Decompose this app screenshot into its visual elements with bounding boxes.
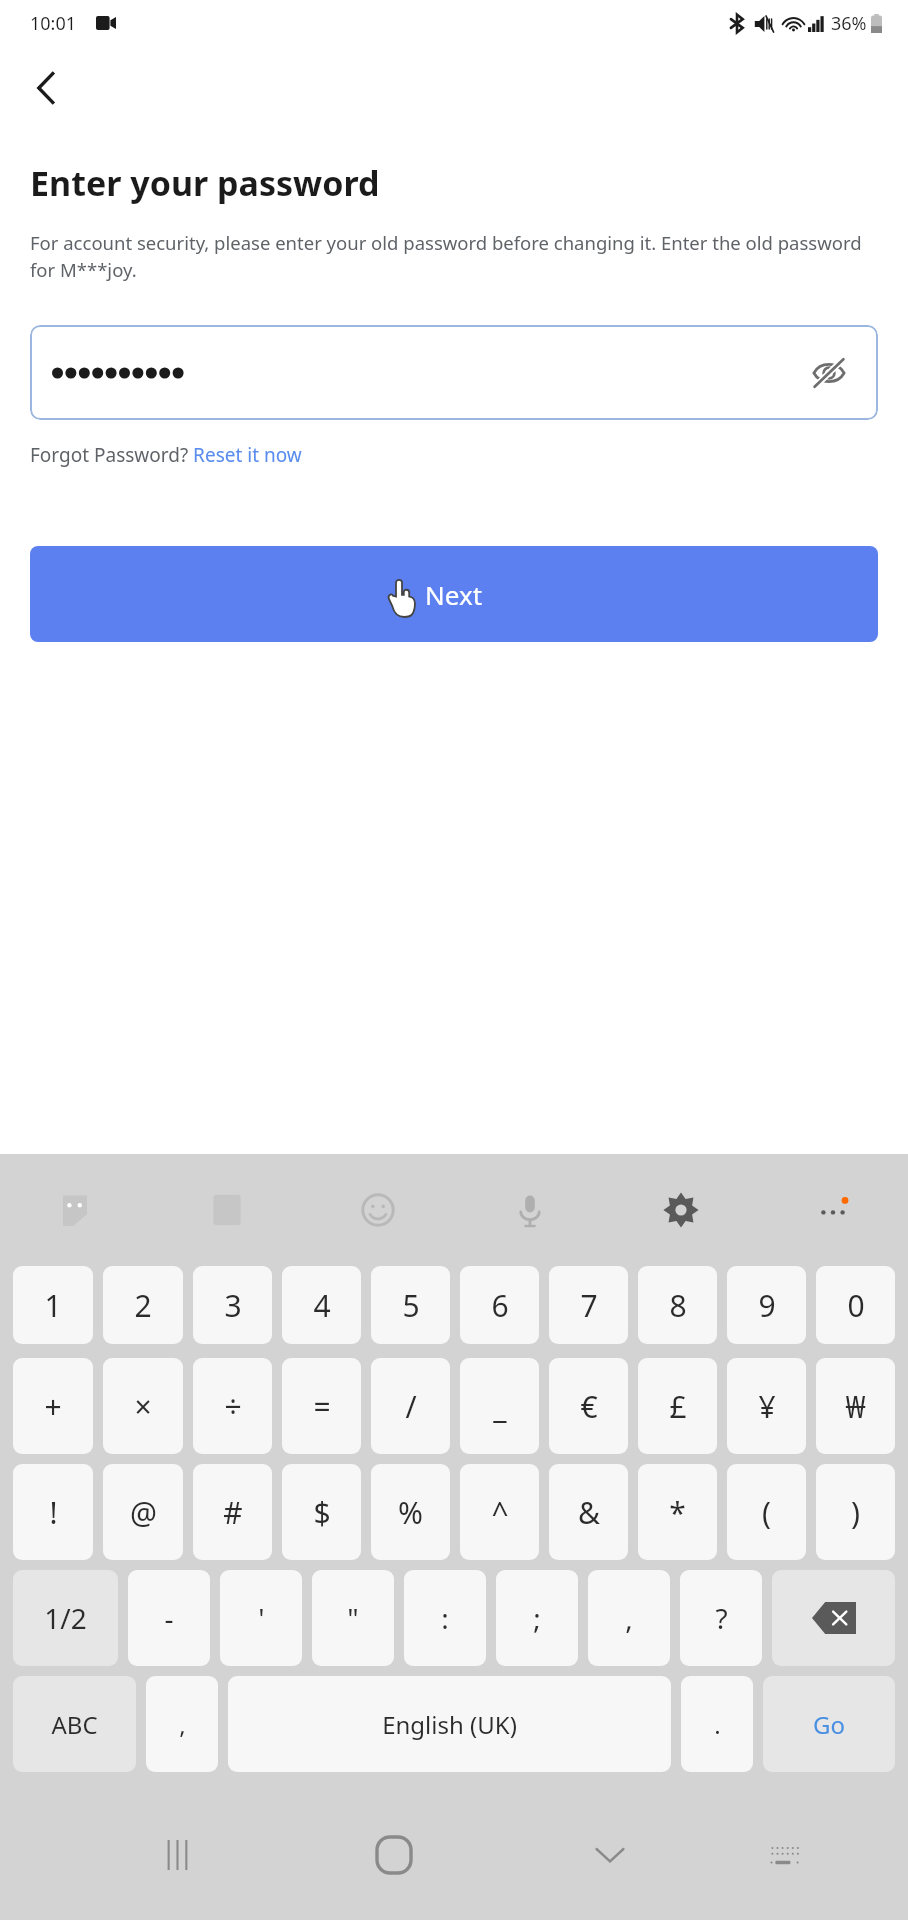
button[interactable]: Back [16,58,76,118]
staticText: 5 [402,1285,420,1326]
button[interactable]: 3 [193,1266,272,1344]
staticText: 2 [134,1285,152,1326]
button[interactable]: 7 [549,1266,628,1344]
button[interactable]: ! [13,1464,93,1560]
button[interactable]: Recents [146,1823,210,1887]
button[interactable]: : [404,1570,486,1666]
button[interactable]: _ [460,1358,539,1454]
staticText: ' [258,1599,265,1637]
button[interactable]: 5 [371,1266,450,1344]
staticText: 10:01 [30,11,77,36]
staticText: × [134,1386,152,1427]
button[interactable]: Hide keyboard [578,1823,642,1887]
button[interactable]: ^ [460,1464,539,1560]
button[interactable]: # [193,1464,272,1560]
staticText: For account security, please enter your … [30,230,880,283]
staticText: ( [762,1492,771,1533]
staticText: 0 [847,1285,865,1326]
button[interactable]: 1/2 [13,1570,118,1666]
staticText: # [223,1492,243,1533]
staticText: / [405,1386,417,1427]
button[interactable]: 6 [460,1266,539,1344]
button[interactable]: GIF [196,1179,258,1241]
button[interactable]: $ [282,1464,361,1560]
button[interactable]: Hide password [802,346,856,400]
button[interactable]: Home [362,1823,426,1887]
staticText: & [578,1492,600,1533]
button[interactable]: 8 [638,1266,717,1344]
button[interactable]: Keyboard layout [753,1823,817,1887]
staticText: Go [813,1708,845,1741]
button[interactable]: Next [30,546,878,642]
button[interactable]: 9 [727,1266,806,1344]
button[interactable]: , [588,1570,670,1666]
button[interactable]: Keyboard settings [650,1179,712,1241]
button[interactable]: 0 [816,1266,895,1344]
staticText: 4 [313,1285,331,1326]
staticText: £ [669,1386,687,1427]
staticText: € [580,1386,598,1427]
staticText: * [669,1492,686,1533]
button[interactable]: & [549,1464,628,1560]
button[interactable]: Hide password [30,325,878,420]
staticText: ÷ [224,1386,242,1427]
button[interactable]: € [549,1358,628,1454]
staticText: Enter your password [30,160,380,206]
button[interactable]: . [681,1676,753,1772]
staticText: ! [49,1492,58,1533]
button[interactable]: 1 [13,1266,93,1344]
button[interactable]: + [13,1358,93,1454]
button[interactable]: ABC [13,1676,136,1772]
button[interactable]: - [128,1570,210,1666]
staticText: . [714,1708,721,1741]
button[interactable]: 2 [103,1266,183,1344]
button[interactable]: ₩ [816,1358,895,1454]
button[interactable] [772,1570,895,1666]
button[interactable]: Stickers [44,1179,106,1241]
button[interactable]: ? [680,1570,762,1666]
staticText: $ [313,1492,331,1533]
staticText: ABC [51,1708,98,1741]
button[interactable]: ; [496,1570,578,1666]
button[interactable]: / [371,1358,450,1454]
button[interactable]: , [146,1676,218,1772]
staticText: , [179,1708,186,1741]
staticText: 7 [580,1285,598,1326]
button[interactable]: ÷ [193,1358,272,1454]
staticText: " [347,1599,359,1637]
button[interactable]: 4 [282,1266,361,1344]
button[interactable]: % [371,1464,450,1560]
staticText: ₩ [845,1386,866,1427]
staticText: 1 [44,1285,62,1326]
staticText: 6 [491,1285,509,1326]
button[interactable]: ¥ [727,1358,806,1454]
staticText: _ [493,1386,507,1427]
staticText: ) [851,1492,860,1533]
staticText: - [164,1599,174,1637]
staticText: ? [715,1599,728,1637]
button[interactable]: English (UK) [228,1676,671,1772]
button[interactable]: * [638,1464,717,1560]
staticText: Next [425,577,483,612]
button[interactable]: " [312,1570,394,1666]
button[interactable]: @ [103,1464,183,1560]
button[interactable]: Emoji [347,1179,409,1241]
button[interactable]: ) [816,1464,895,1560]
staticText: + [44,1386,62,1427]
staticText: ; [533,1599,541,1637]
staticText: 36% [831,11,867,36]
button[interactable]: Voice input [499,1179,561,1241]
button[interactable]: Forgot Password? Reset it now [30,442,302,468]
button[interactable]: Go [763,1676,895,1772]
button[interactable]: ( [727,1464,806,1560]
button[interactable]: £ [638,1358,717,1454]
button[interactable]: × [103,1358,183,1454]
staticText: @ [130,1492,157,1533]
staticText: 3 [224,1285,242,1326]
staticText: ¥ [758,1386,776,1427]
button[interactable]: ' [220,1570,302,1666]
button[interactable]: = [282,1358,361,1454]
button[interactable]: More options [802,1179,864,1241]
staticText: 1/2 [44,1599,87,1637]
staticText: 8 [669,1285,687,1326]
